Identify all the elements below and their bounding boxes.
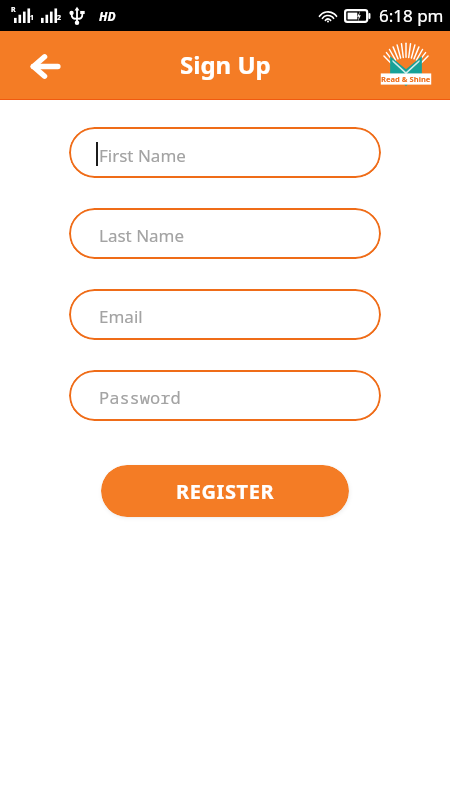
staticText: Read & Shine: [381, 74, 431, 84]
button[interactable]: Email: [69, 289, 381, 340]
staticText: REGISTER: [176, 478, 275, 505]
staticText: Password: [99, 386, 181, 409]
staticText: 2: [57, 13, 62, 23]
button[interactable]: Back: [23, 44, 67, 88]
button[interactable]: First Name: [69, 127, 381, 178]
staticText: 6:18 pm: [379, 4, 444, 27]
staticText: Last Name: [99, 224, 185, 247]
button[interactable]: REGISTER: [101, 465, 349, 517]
staticText: Sign Up: [180, 48, 271, 81]
staticText: R: [11, 5, 16, 15]
button[interactable]: Last Name: [69, 208, 381, 259]
staticText: 1: [30, 13, 35, 23]
staticText: Email: [99, 305, 143, 328]
staticText: First Name: [99, 144, 186, 167]
staticText: HD: [99, 8, 116, 24]
button[interactable]: Password: [69, 370, 381, 421]
